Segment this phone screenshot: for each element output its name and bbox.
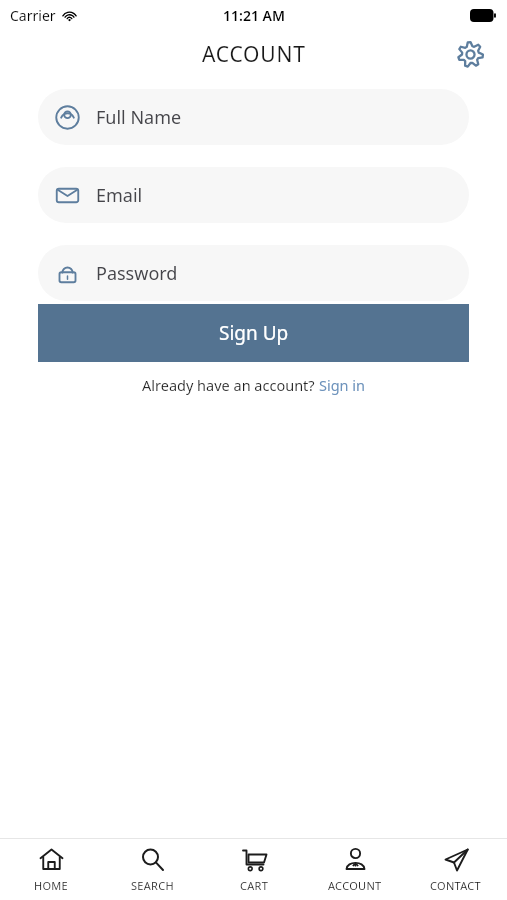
button[interactable]: SEARCH — [102, 847, 202, 893]
staticText: CONTACT — [430, 878, 482, 893]
button[interactable]: HOME — [1, 847, 101, 893]
button[interactable]: CART — [204, 847, 304, 893]
staticText: Full Name — [96, 105, 182, 130]
staticText: Sign in — [319, 375, 366, 395]
button[interactable]: Email — [38, 167, 469, 223]
button[interactable]: Sign in — [319, 375, 366, 395]
staticText: HOME — [34, 878, 69, 893]
staticText: ACCOUNT — [328, 878, 382, 893]
button[interactable]: Full Name — [38, 89, 469, 145]
button[interactable]: Password — [38, 245, 469, 301]
button[interactable]: CONTACT — [406, 847, 506, 893]
button[interactable]: Settings — [453, 37, 487, 71]
staticText: Carrier — [10, 6, 56, 25]
staticText: 11:21 AM — [223, 6, 285, 25]
button[interactable]: ACCOUNT — [305, 847, 405, 893]
staticText: Password — [96, 261, 178, 286]
staticText: Already have an account? — [142, 375, 319, 395]
staticText: Sign Up — [219, 320, 289, 346]
staticText: ACCOUNT — [202, 40, 306, 69]
staticText: Email — [96, 183, 143, 208]
staticText: CART — [240, 878, 269, 893]
staticText: SEARCH — [131, 878, 174, 893]
button[interactable]: Sign Up — [38, 304, 469, 362]
